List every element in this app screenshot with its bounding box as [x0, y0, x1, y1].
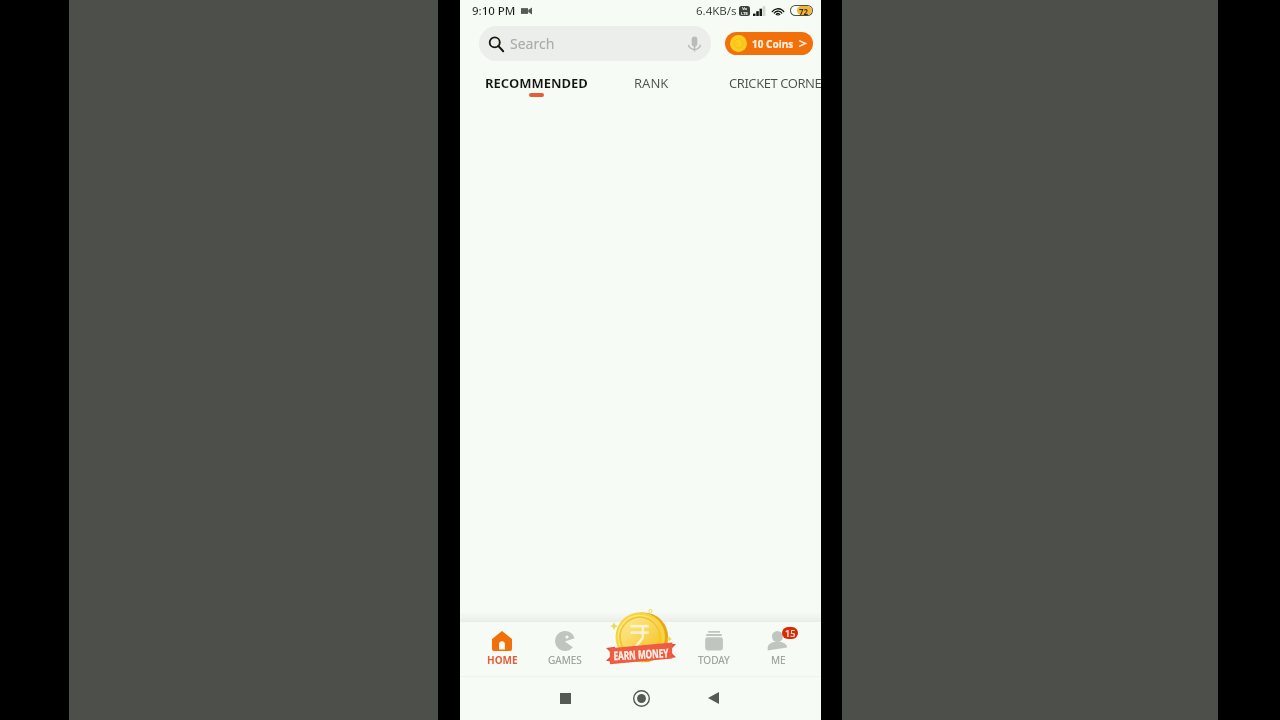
button[interactable]: RECOMMENDED — [485, 74, 588, 97]
button[interactable]: 15 — [747, 621, 809, 676]
button[interactable]: Back — [695, 680, 731, 716]
button[interactable]: Recents — [547, 680, 583, 716]
button[interactable]: Voice search — [686, 35, 703, 52]
staticText: ME — [771, 653, 786, 667]
button[interactable]: TODAY — [683, 621, 745, 676]
staticText: Vo LTE — [741, 6, 748, 16]
staticText: RECOMMENDED — [485, 74, 588, 92]
staticText: HOME — [487, 653, 518, 667]
button[interactable]: RANK — [634, 74, 669, 92]
staticText: 15 — [785, 627, 796, 639]
button[interactable]: Home — [623, 680, 659, 716]
button[interactable]: Earn Money — [606, 608, 676, 662]
staticText: CRICKET CORNER — [729, 74, 821, 92]
staticText: 9:10 PM — [472, 3, 516, 19]
staticText: 10 Coins — [752, 37, 794, 51]
staticText: GAMES — [548, 653, 582, 667]
staticText: 6.4KB/s — [696, 3, 737, 19]
button[interactable]: HOME — [471, 621, 533, 676]
staticText: 72 — [799, 6, 809, 15]
button[interactable]: Search — [479, 26, 711, 61]
button[interactable]: 10 Coins — [725, 32, 813, 55]
button[interactable]: CRICKET CORNER — [729, 74, 821, 92]
staticText: EARN MONEY — [613, 645, 669, 664]
staticText: Search — [510, 34, 555, 53]
staticText: RANK — [634, 74, 669, 92]
button[interactable]: GAMES — [534, 621, 596, 676]
staticText: TODAY — [698, 653, 730, 667]
